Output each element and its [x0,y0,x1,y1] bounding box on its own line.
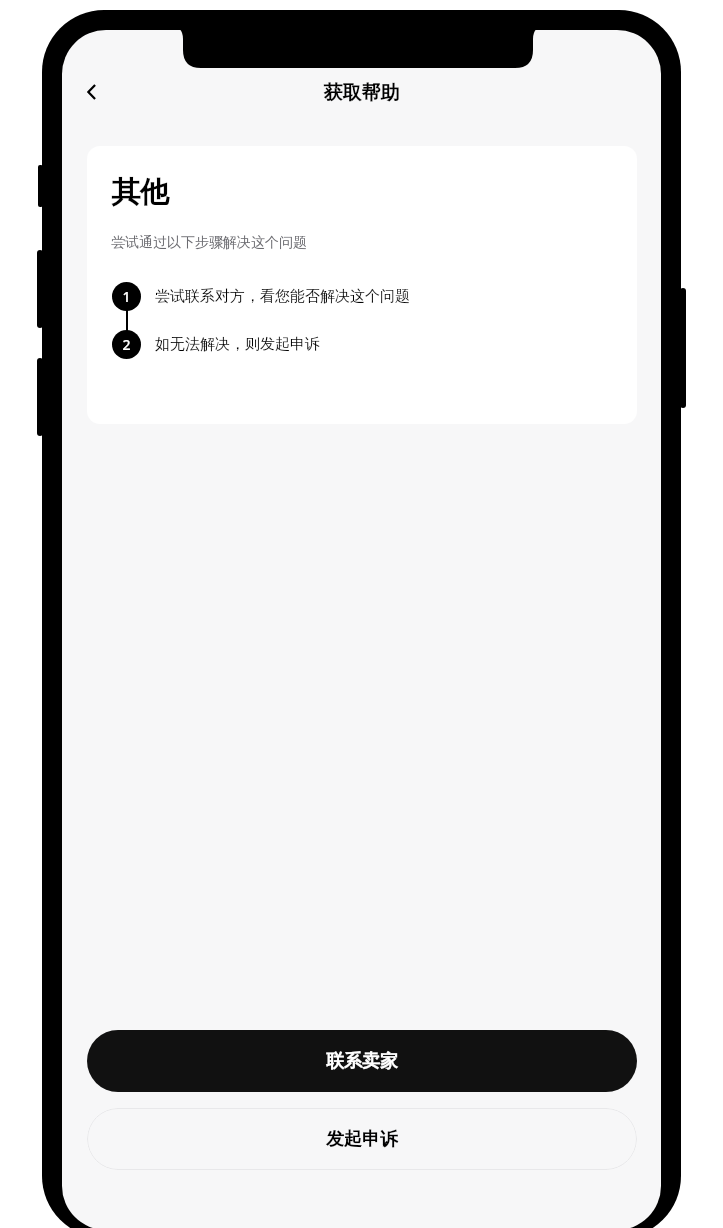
staticText: 获取帮助 [62,81,661,105]
staticText: 如无法解决，则发起申诉 [155,335,320,354]
staticText: 尝试联系对方，看您能否解决这个问题 [155,287,410,306]
staticText: 1 [122,287,131,306]
button[interactable]: 发起申诉 [87,1108,637,1170]
button[interactable]: 联系卖家 [87,1030,637,1092]
staticText: 发起申诉 [326,1128,398,1151]
staticText: 2 [122,335,131,354]
button[interactable]: 返回 [69,68,117,116]
staticText: 尝试通过以下步骤解决这个问题 [111,234,307,252]
staticText: 其他 [111,174,169,211]
staticText: 联系卖家 [326,1050,398,1073]
